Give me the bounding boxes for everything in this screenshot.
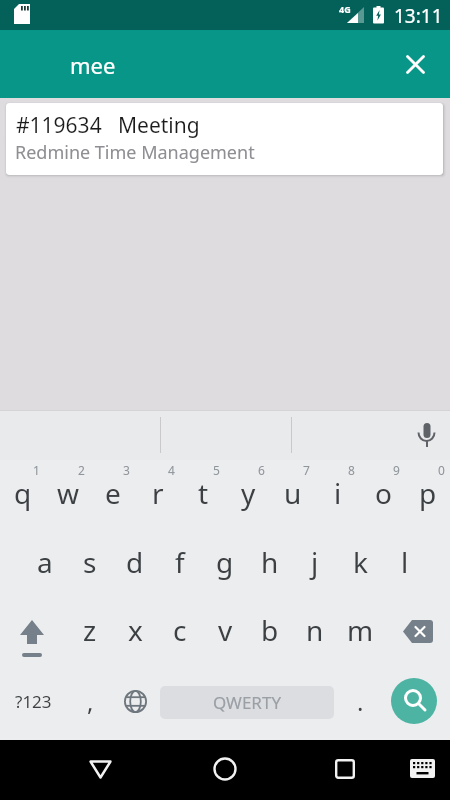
button[interactable]	[4, 607, 60, 673]
button[interactable]	[391, 678, 437, 724]
staticText: 4	[168, 462, 175, 478]
button[interactable]: k	[338, 529, 382, 595]
staticText: b	[261, 611, 279, 649]
staticText: d	[126, 543, 144, 581]
staticText: QWERTY	[213, 691, 282, 714]
staticText: a	[37, 543, 53, 581]
button[interactable]: h	[248, 529, 292, 595]
staticText: #119634	[16, 111, 102, 140]
staticText: ?123	[15, 690, 52, 713]
staticText: t	[198, 474, 209, 512]
staticText: Meeting	[118, 111, 200, 140]
staticText: i	[334, 474, 342, 512]
button[interactable]	[395, 44, 435, 84]
staticText: 6	[258, 462, 265, 478]
staticText: 3	[123, 462, 130, 478]
staticText: w	[57, 474, 80, 512]
button[interactable]: v	[203, 597, 247, 663]
button[interactable]: o	[361, 460, 405, 526]
button[interactable]: f	[158, 529, 202, 595]
staticText: ,	[87, 685, 94, 718]
button[interactable]: u	[271, 460, 315, 526]
staticText: 1	[33, 462, 40, 478]
button[interactable]: .	[340, 668, 380, 734]
staticText: c	[173, 611, 187, 649]
staticText: 0	[438, 462, 445, 478]
staticText: e	[105, 474, 121, 512]
button[interactable]: a	[23, 529, 67, 595]
button[interactable]: #119634	[6, 103, 443, 175]
button[interactable]	[323, 747, 367, 791]
button[interactable]: s	[68, 529, 112, 595]
button[interactable]: r	[136, 460, 180, 526]
staticText: u	[284, 474, 302, 512]
staticText: 7	[303, 462, 310, 478]
staticText: .	[357, 685, 364, 718]
staticText: f	[175, 543, 185, 581]
button[interactable]: z	[68, 597, 112, 663]
button[interactable]: j	[293, 529, 337, 595]
button[interactable]	[203, 747, 247, 791]
button[interactable]: x	[113, 597, 157, 663]
staticText: 13:11	[394, 3, 443, 29]
staticText: z	[83, 611, 97, 649]
button[interactable]	[113, 679, 157, 723]
button[interactable]: ?123	[8, 668, 58, 734]
button[interactable]	[78, 747, 122, 791]
staticText: 8	[348, 462, 355, 478]
button[interactable]: d	[113, 529, 157, 595]
staticText: r	[152, 474, 164, 512]
staticText: h	[261, 543, 279, 581]
button[interactable]: n	[293, 597, 337, 663]
staticText: j	[311, 543, 319, 581]
staticText: k	[353, 543, 368, 581]
staticText: Redmine Time Management	[15, 140, 255, 165]
button[interactable]	[402, 748, 442, 788]
button[interactable]: b	[248, 597, 292, 663]
button[interactable]	[390, 598, 446, 664]
staticText: 9	[393, 462, 400, 478]
button[interactable]: y	[226, 460, 270, 526]
staticText: v	[218, 611, 233, 649]
button[interactable]: p	[406, 460, 450, 526]
staticText: s	[83, 543, 97, 581]
staticText: x	[128, 611, 143, 649]
staticText: 5	[213, 462, 220, 478]
button[interactable]: m	[338, 597, 382, 663]
button[interactable]: c	[158, 597, 202, 663]
staticText: g	[216, 543, 234, 581]
button[interactable]: t	[181, 460, 225, 526]
button[interactable]: e	[91, 460, 135, 526]
button[interactable]	[408, 417, 446, 455]
button[interactable]: ,	[68, 668, 112, 734]
staticText: mee	[70, 50, 116, 80]
button[interactable]: QWERTY	[160, 686, 334, 719]
staticText: 2	[78, 462, 85, 478]
staticText: y	[241, 474, 256, 512]
staticText: m	[347, 611, 374, 649]
button[interactable]: q	[1, 460, 45, 526]
button[interactable]: g	[203, 529, 247, 595]
button[interactable]: l	[383, 529, 427, 595]
staticText: n	[306, 611, 324, 649]
button[interactable]: w	[46, 460, 90, 526]
staticText: o	[375, 474, 392, 512]
button[interactable]: i	[316, 460, 360, 526]
staticText: p	[419, 474, 437, 512]
staticText: 4G	[339, 3, 351, 15]
staticText: q	[14, 474, 32, 512]
staticText: l	[401, 543, 409, 581]
